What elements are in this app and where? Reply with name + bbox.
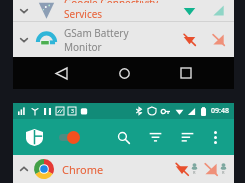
button[interactable]: Chrome [13, 155, 234, 183]
button[interactable]: Recents [171, 58, 201, 88]
button[interactable]: Firewall toggle [57, 126, 87, 148]
button[interactable]: Home [109, 58, 139, 88]
button[interactable]: AFWall shield [21, 124, 47, 150]
staticText: 3 [71, 108, 74, 115]
staticText: Chrome [62, 162, 104, 177]
button[interactable]: Sort [174, 124, 200, 150]
button[interactable]: Filter [142, 124, 168, 150]
staticText: Services [64, 7, 103, 21]
staticText: R [222, 170, 225, 175]
staticText: Monitor [64, 40, 102, 54]
button[interactable]: Google Connectivity [13, 0, 234, 21]
button[interactable]: Back [46, 58, 76, 88]
staticText: GSam Battery [64, 26, 129, 40]
staticText: 09:48 [211, 106, 229, 116]
button[interactable]: Search [110, 124, 136, 150]
button[interactable]: GSam Battery [13, 22, 234, 57]
staticText: Google Connectivity [64, 0, 159, 3]
button[interactable]: More options [204, 126, 226, 148]
staticText: R [193, 170, 196, 175]
